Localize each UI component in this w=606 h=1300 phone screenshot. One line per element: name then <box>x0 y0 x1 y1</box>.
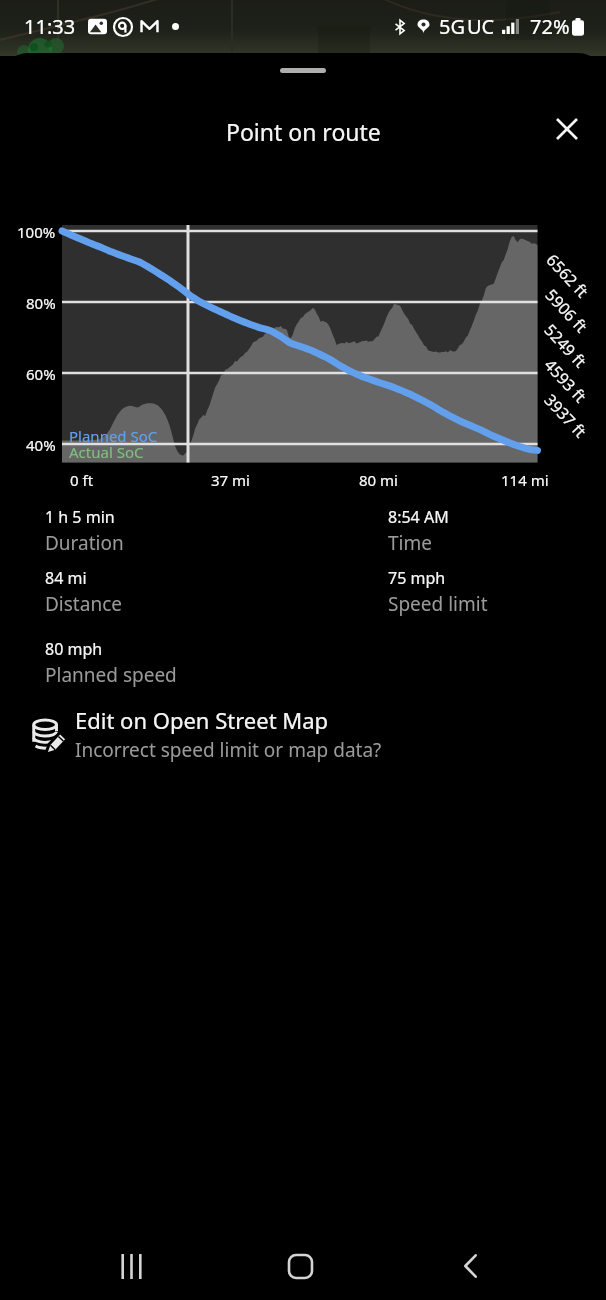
staticText: 6562 ft <box>543 249 594 302</box>
staticText: Edit on Open Street Map <box>75 705 329 735</box>
staticText: 11:33 <box>24 13 76 40</box>
staticText: Actual SoC <box>69 442 144 462</box>
button[interactable]: Recent apps <box>105 1240 157 1292</box>
staticText: 5906 ft <box>542 284 593 337</box>
staticText: Point on route <box>226 116 381 147</box>
staticText: 3937 ft <box>541 389 592 442</box>
staticText: 0 ft <box>70 470 94 490</box>
staticText: UC <box>467 13 495 40</box>
staticText: 72% <box>530 13 570 40</box>
staticText: 60% <box>26 364 56 384</box>
button[interactable]: Home <box>274 1240 326 1292</box>
button[interactable]: Back <box>444 1240 496 1292</box>
staticText: Incorrect speed limit or map data? <box>75 737 382 763</box>
staticText: Time <box>388 530 432 556</box>
staticText: 40% <box>26 435 56 455</box>
staticText: 100% <box>17 222 56 242</box>
staticText: 80% <box>26 293 56 313</box>
staticText: 4593 ft <box>541 354 592 407</box>
staticText: 80 mi <box>359 470 398 490</box>
staticText: 5G <box>439 13 465 40</box>
staticText: 5249 ft <box>541 319 592 372</box>
staticText: 84 mi <box>45 567 87 589</box>
staticText: Planned SoC <box>69 426 158 446</box>
staticText: 37 mi <box>211 470 250 490</box>
staticText: Duration <box>45 530 124 556</box>
staticText: 8:54 AM <box>388 506 449 528</box>
staticText: Speed limit <box>388 591 488 617</box>
staticText: Planned speed <box>45 662 177 688</box>
staticText: 114 mi <box>501 470 549 490</box>
staticText: Distance <box>45 591 122 617</box>
staticText: 1 h 5 min <box>45 506 115 528</box>
staticText: 75 mph <box>388 567 446 589</box>
button[interactable]: Close <box>549 111 585 147</box>
button[interactable]: Edit on Open Street Map <box>0 699 606 773</box>
staticText: 80 mph <box>45 638 103 660</box>
